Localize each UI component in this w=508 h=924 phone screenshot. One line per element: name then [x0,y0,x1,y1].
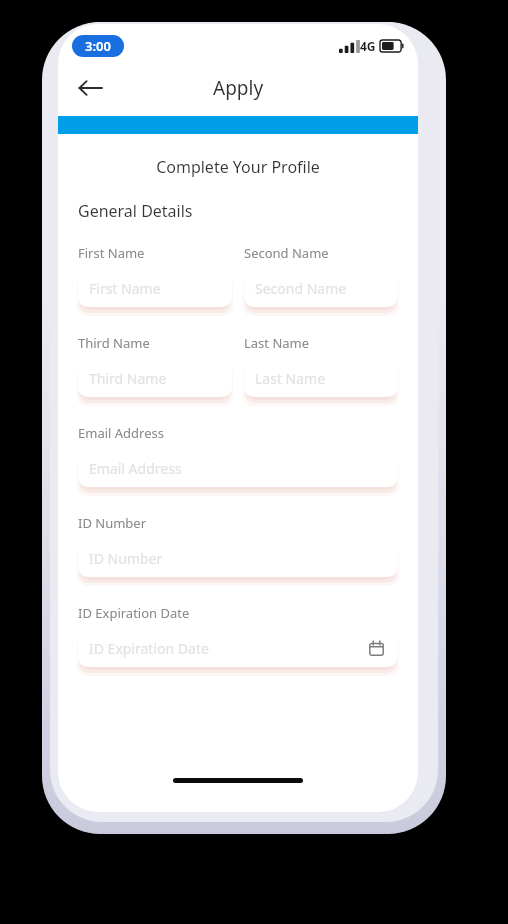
staticText: 3:00 [85,37,111,55]
button[interactable]: First Name [78,269,232,307]
staticText: Last Name [255,369,387,388]
staticText: General Details [78,200,193,222]
button[interactable]: ID Number [78,539,398,577]
staticText: Last Name [244,334,310,352]
staticText: ID Number [78,514,147,532]
staticText: 4G [360,38,376,54]
staticText: First Name [89,279,221,298]
staticText: Third Name [78,334,150,352]
staticText: ID Expiration Date [78,604,190,622]
staticText: ID Number [89,549,387,568]
button[interactable]: Third Name [78,359,232,397]
button[interactable]: Last Name [244,359,398,397]
staticText: Complete Your Profile [78,156,398,178]
staticText: Second Name [244,244,329,262]
button[interactable]: Email Address [78,449,398,487]
staticText: First Name [78,244,145,262]
staticText: ID Expiration Date [89,639,365,658]
staticText: Email Address [78,424,164,442]
button[interactable]: Second Name [244,269,398,307]
button[interactable]: ID Expiration Date [78,629,398,667]
button[interactable]: Pick date [365,637,387,659]
button[interactable]: Back [68,66,112,110]
staticText: Apply [213,75,264,101]
staticText: Second Name [255,279,387,298]
staticText: Email Address [89,459,387,478]
staticText: Third Name [89,369,221,388]
